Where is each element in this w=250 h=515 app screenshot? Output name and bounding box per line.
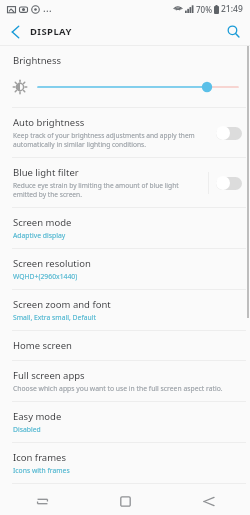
- staticText: DISPLAY: [30, 25, 72, 38]
- button[interactable]: Screen mode: [0, 208, 250, 248]
- button[interactable]: Home: [84, 487, 167, 515]
- staticText: Blue light filter: [13, 166, 79, 179]
- staticText: Home screen: [13, 339, 72, 352]
- button[interactable]: Icon frames: [0, 443, 250, 483]
- button[interactable]: Screen resolution: [0, 249, 250, 289]
- staticText: Screen zoom and font: [13, 298, 111, 311]
- staticText: Full screen apps: [13, 369, 85, 382]
- button[interactable]: Auto brightness: [0, 108, 250, 157]
- staticText: Disabled: [13, 425, 41, 434]
- button[interactable]: Easy mode: [0, 402, 250, 442]
- button[interactable]: Toggle: [216, 176, 242, 190]
- staticText: Auto brightness: [13, 116, 85, 129]
- button[interactable]: Back: [167, 487, 250, 515]
- staticText: Choose which apps you want to use in the…: [13, 384, 223, 393]
- staticText: Screen mode: [13, 216, 72, 229]
- button[interactable]: Screen zoom and font: [0, 290, 250, 330]
- staticText: Small, Extra small, Default: [13, 313, 96, 322]
- button[interactable]: Navigate up: [0, 18, 30, 45]
- button[interactable]: Home screen: [0, 331, 250, 360]
- button[interactable]: Blue light filter: [0, 158, 250, 207]
- staticText: 21:49: [221, 3, 243, 15]
- staticText: 70%: [196, 4, 212, 15]
- staticText: Keep track of your brightness adjustment…: [13, 131, 195, 149]
- button[interactable]: Toggle: [216, 126, 242, 140]
- staticText: Icon frames: [13, 451, 66, 464]
- staticText: Icons with frames: [13, 466, 70, 475]
- staticText: WQHD+(2960x1440): [13, 272, 78, 281]
- button[interactable]: Full screen apps: [0, 361, 250, 401]
- staticText: Brightness: [13, 54, 62, 67]
- button[interactable]: Recent apps: [0, 487, 84, 515]
- staticText: Reduce eye strain by limiting the amount…: [13, 181, 179, 199]
- staticText: Adaptive display: [13, 231, 66, 240]
- button[interactable]: Search: [216, 18, 250, 45]
- staticText: Screen resolution: [13, 257, 91, 270]
- staticText: Easy mode: [13, 410, 62, 423]
